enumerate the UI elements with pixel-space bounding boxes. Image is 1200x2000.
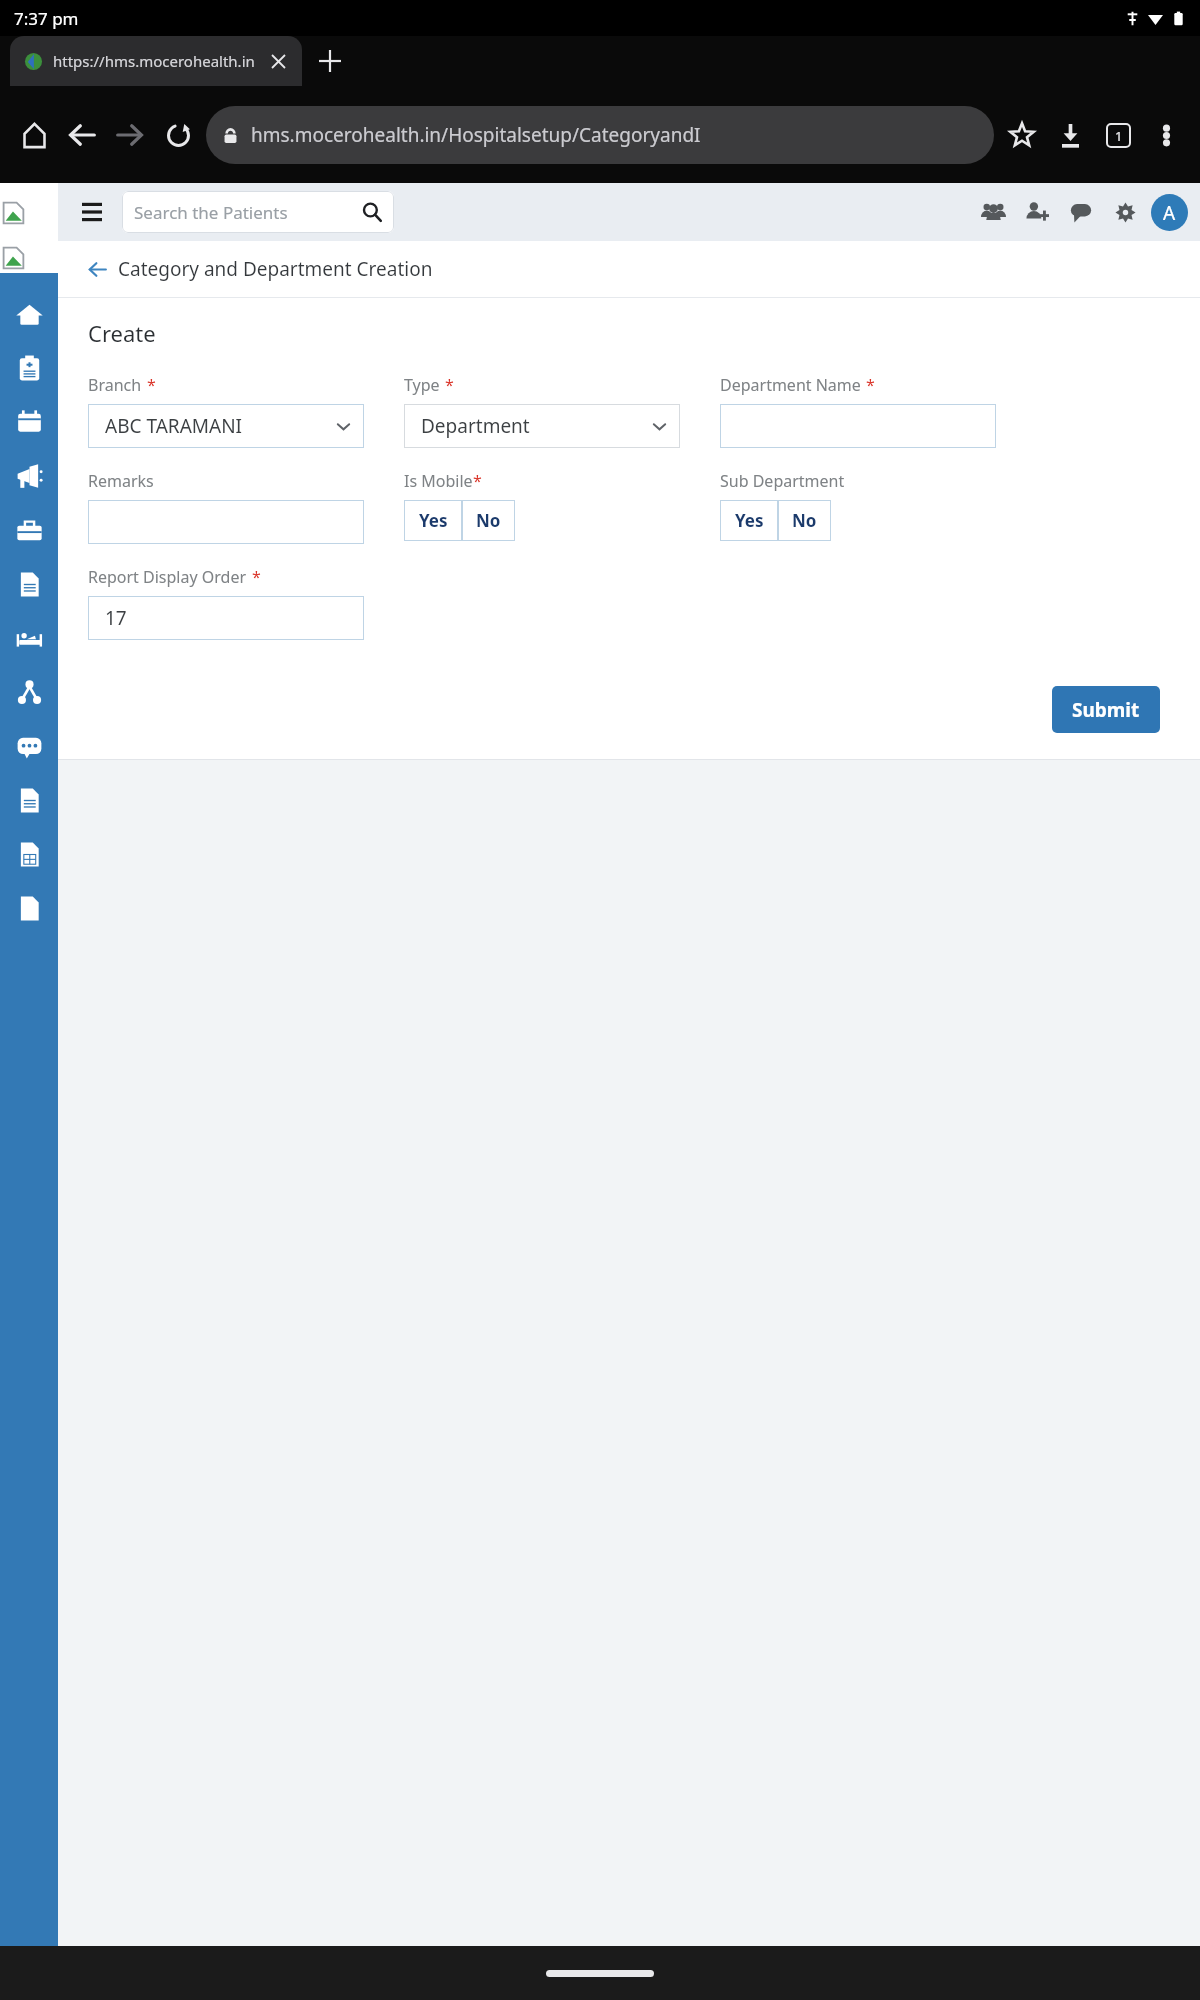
- button[interactable]: More: [0, 719, 58, 773]
- staticText: Submit: [1072, 697, 1140, 723]
- button[interactable]: New tab: [304, 36, 356, 86]
- button[interactable]: Category and Department Creation: [58, 241, 1200, 297]
- staticText: hms.mocerohealth.in/Hospitalsetup/Catego…: [251, 122, 701, 148]
- button[interactable]: Menu: [74, 194, 110, 230]
- staticText: Report Display Order: [88, 566, 247, 588]
- button[interactable]: Documents: [0, 773, 58, 827]
- button[interactable]: Services: [0, 503, 58, 557]
- staticText: Department Name: [720, 374, 861, 396]
- button[interactable]: Registration: [0, 341, 58, 395]
- button[interactable]: Forward: [106, 111, 154, 159]
- staticText: Create: [88, 318, 156, 348]
- button[interactable]: Reload: [154, 111, 202, 159]
- staticText: Yes: [419, 509, 448, 532]
- button[interactable]: No: [778, 500, 831, 541]
- staticText: Branch: [88, 374, 142, 396]
- button[interactable]: [88, 500, 364, 544]
- staticText: No: [792, 509, 817, 532]
- button[interactable]: Add patient: [1015, 190, 1059, 234]
- button[interactable]: Department: [404, 404, 680, 448]
- button[interactable]: No: [462, 500, 515, 541]
- button[interactable]: Reports: [0, 557, 58, 611]
- button[interactable]: 17: [88, 596, 364, 640]
- button[interactable]: Tabs: [1094, 111, 1142, 159]
- button[interactable]: Announcements: [0, 449, 58, 503]
- staticText: Sub Department: [720, 470, 845, 492]
- button[interactable]: https://hms.mocerohealth.in: [10, 36, 302, 86]
- button[interactable]: Download: [1046, 111, 1094, 159]
- staticText: Remarks: [88, 470, 154, 492]
- button[interactable]: hms.mocerohealth.in/Hospitalsetup/Catego…: [206, 106, 994, 164]
- button[interactable]: [720, 404, 996, 448]
- staticText: *: [147, 374, 156, 396]
- staticText: *: [445, 374, 454, 396]
- staticText: Department: [421, 413, 652, 439]
- button[interactable]: Back: [58, 111, 106, 159]
- button[interactable]: Account: [1151, 194, 1188, 231]
- button[interactable]: Settings: [1103, 190, 1147, 234]
- button[interactable]: Yes: [404, 500, 462, 541]
- button[interactable]: Close tab: [262, 45, 294, 77]
- button[interactable]: Departments: [0, 665, 58, 719]
- button[interactable]: Submit: [1052, 686, 1160, 733]
- staticText: ABC TARAMANI: [105, 413, 336, 439]
- button[interactable]: More options: [1142, 111, 1190, 159]
- staticText: https://hms.mocerohealth.in: [53, 51, 255, 71]
- staticText: Type: [404, 374, 440, 396]
- button[interactable]: Search the Patients: [122, 191, 394, 233]
- button[interactable]: ABC TARAMANI: [88, 404, 364, 448]
- staticText: 17: [105, 605, 127, 631]
- button[interactable]: Home: [10, 111, 58, 159]
- staticText: 7:37 pm: [14, 7, 79, 30]
- staticText: Yes: [735, 509, 764, 532]
- button[interactable]: Patient groups: [971, 190, 1015, 234]
- staticText: Is Mobile: [404, 470, 473, 492]
- staticText: *: [252, 566, 261, 588]
- staticText: A: [1163, 200, 1176, 226]
- button[interactable]: Bookmark: [998, 111, 1046, 159]
- button[interactable]: Inpatients: [0, 611, 58, 665]
- button[interactable]: Files: [0, 881, 58, 935]
- button[interactable]: Report sheets: [0, 827, 58, 881]
- staticText: *: [866, 374, 875, 396]
- button[interactable]: Yes: [720, 500, 778, 541]
- button[interactable]: Home: [0, 287, 58, 341]
- staticText: Search the Patients: [134, 201, 362, 224]
- button[interactable]: Messages: [1059, 190, 1103, 234]
- staticText: Category and Department Creation: [118, 256, 433, 282]
- staticText: *: [473, 470, 482, 492]
- staticText: 1: [1115, 127, 1123, 145]
- button[interactable]: Appointments: [0, 395, 58, 449]
- staticText: No: [476, 509, 501, 532]
